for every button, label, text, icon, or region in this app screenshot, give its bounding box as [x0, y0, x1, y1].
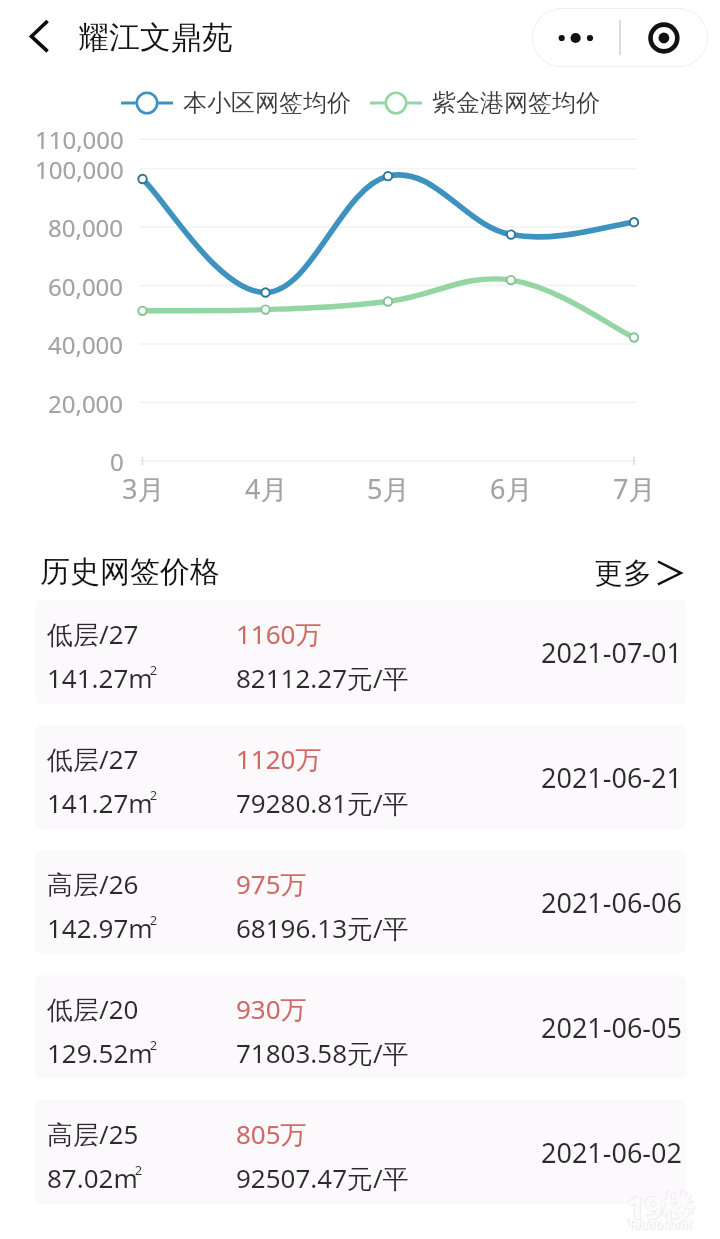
button[interactable]: 更多: [594, 553, 688, 593]
staticText: 历史网签价格: [40, 553, 220, 591]
staticText: 紫金港网签均价: [432, 88, 600, 118]
staticText: 60,000: [48, 270, 124, 302]
staticText: 129.52m2: [47, 1035, 158, 1070]
staticText: 142.97m2: [47, 910, 158, 945]
staticText: 92507.47元/平: [236, 1160, 409, 1196]
staticText: 80,000: [48, 211, 124, 243]
staticText: 19Lou.com: [627, 1216, 692, 1232]
staticText: 2021-06-06: [541, 884, 682, 921]
staticText: 20,000: [48, 387, 124, 419]
staticText: 79280.81元/平: [236, 785, 409, 821]
staticText: 低层/27: [47, 616, 139, 652]
staticText: 19楼: [627, 1186, 694, 1228]
staticText: 高层/26: [47, 866, 139, 902]
staticText: 40,000: [48, 328, 124, 360]
staticText: 3月: [122, 470, 165, 506]
staticText: 2021-06-21: [541, 759, 682, 796]
staticText: 19楼: [628, 1187, 695, 1229]
staticText: 71803.58元/平: [236, 1035, 409, 1071]
staticText: 2021-07-01: [541, 634, 682, 671]
staticText: 805万: [236, 1116, 307, 1152]
button[interactable]: Back: [14, 10, 64, 60]
staticText: 耀江文鼎苑: [78, 18, 233, 57]
staticText: 19楼: [626, 1185, 693, 1227]
staticText: 975万: [236, 866, 307, 902]
staticText: 1160万: [236, 616, 322, 652]
staticText: 0: [110, 445, 124, 477]
staticText: 低层/20: [47, 991, 139, 1027]
staticText: 4月: [245, 470, 288, 506]
button[interactable]: 低层/27: [35, 725, 686, 829]
staticText: 2021-06-02: [541, 1134, 682, 1171]
staticText: 19Lou.com: [628, 1217, 693, 1233]
staticText: 110,000: [35, 123, 124, 155]
staticText: 87.02m2: [47, 1160, 143, 1195]
staticText: 19Lou.com: [626, 1215, 691, 1231]
staticText: 68196.13元/平: [236, 910, 409, 946]
button[interactable]: 高层/26: [35, 850, 686, 954]
button[interactable]: 低层/20: [35, 975, 686, 1079]
button[interactable]: 低层/27: [35, 600, 686, 704]
staticText: 6月: [490, 470, 533, 506]
staticText: 高层/25: [47, 1116, 139, 1152]
staticText: 1120万: [236, 741, 322, 777]
staticText: 低层/27: [47, 741, 139, 777]
staticText: 141.27m2: [47, 660, 158, 695]
staticText: 141.27m2: [47, 785, 158, 820]
button[interactable]: 高层/25: [35, 1100, 686, 1204]
staticText: 100,000: [35, 153, 124, 185]
button[interactable]: Menu: [532, 8, 708, 67]
staticText: 82112.27元/平: [236, 660, 409, 696]
staticText: 本小区网签均价: [183, 88, 351, 118]
staticText: 5月: [367, 470, 410, 506]
staticText: 2021-06-05: [541, 1009, 682, 1046]
staticText: 更多: [594, 555, 652, 592]
staticText: 7月: [613, 470, 656, 506]
staticText: 930万: [236, 991, 307, 1027]
